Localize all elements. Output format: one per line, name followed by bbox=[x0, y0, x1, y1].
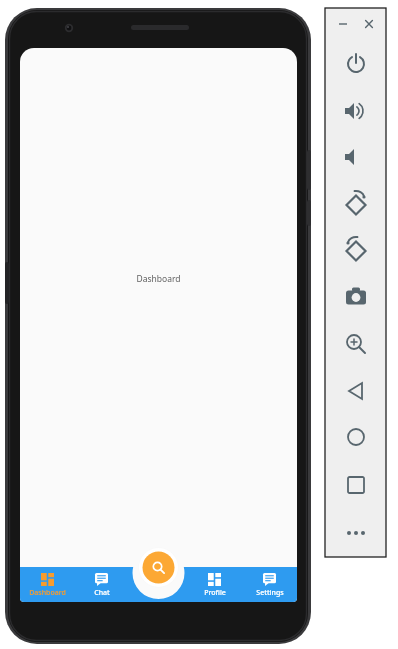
button[interactable]: Settings bbox=[242, 567, 297, 602]
button[interactable]: More bbox=[342, 519, 370, 547]
button[interactable]: Overview bbox=[342, 463, 370, 491]
button[interactable]: Minimize bbox=[339, 18, 357, 32]
staticText: Profile bbox=[204, 588, 226, 598]
button[interactable]: Search bbox=[138, 547, 179, 588]
staticText: Settings bbox=[256, 588, 284, 598]
button[interactable]: Home bbox=[342, 423, 370, 451]
button[interactable]: Zoom bbox=[342, 330, 370, 358]
button[interactable]: Power bbox=[342, 50, 370, 78]
button[interactable]: Take Screenshot bbox=[342, 283, 370, 311]
button[interactable]: Close bbox=[363, 18, 381, 32]
button[interactable]: Chat bbox=[74, 567, 129, 602]
button[interactable]: Rotate Left bbox=[342, 191, 370, 219]
button[interactable]: Volume Up bbox=[342, 97, 370, 125]
button[interactable]: Volume Down bbox=[342, 143, 370, 171]
staticText: Dashboard bbox=[136, 273, 181, 285]
button[interactable]: Dashboard bbox=[20, 567, 74, 602]
button[interactable]: Rotate Right bbox=[342, 237, 370, 265]
button[interactable]: Profile bbox=[187, 567, 242, 602]
button[interactable]: Back bbox=[342, 377, 370, 405]
staticText: Dashboard bbox=[29, 588, 66, 598]
staticText: Chat bbox=[94, 588, 110, 598]
